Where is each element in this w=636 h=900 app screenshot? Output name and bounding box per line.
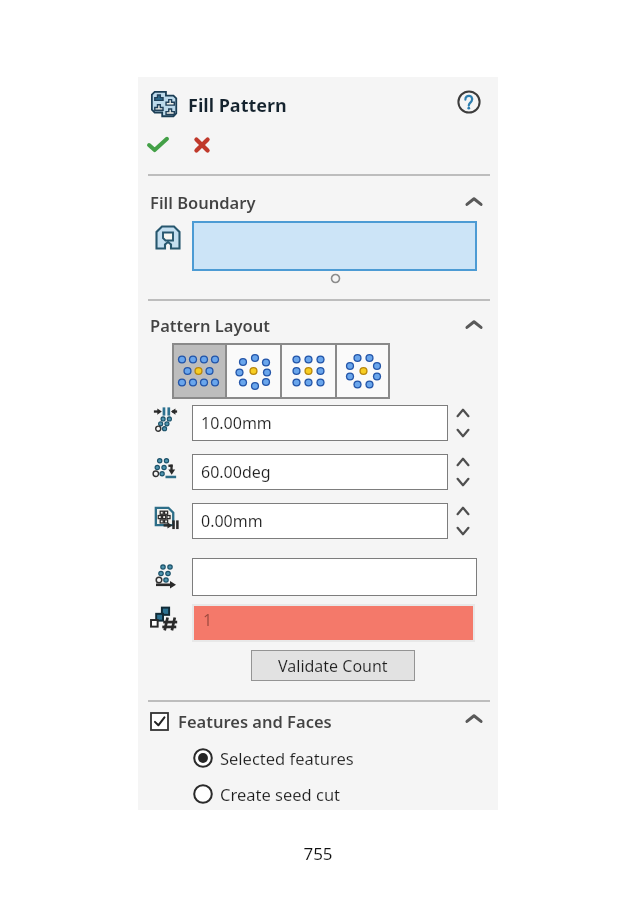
button[interactable]: Collapse: [463, 316, 485, 338]
button[interactable]: Layout 1: [227, 343, 280, 399]
staticText: Validate Count: [278, 655, 388, 677]
staticText: 0.00mm: [201, 510, 263, 532]
staticText: 10.00mm: [201, 412, 272, 434]
button[interactable]: 1: [194, 606, 473, 640]
button[interactable]: Layout 2: [282, 343, 335, 399]
button[interactable]: Pattern Layout: [150, 314, 270, 338]
button[interactable]: Selected features: [193, 746, 354, 770]
staticText: 1: [203, 609, 213, 631]
button[interactable]: Increase/decrease: [455, 455, 471, 489]
button[interactable]: Increase/decrease: [455, 406, 471, 440]
button[interactable]: Create seed cut: [193, 782, 341, 806]
button[interactable]: Layout 3: [337, 343, 390, 399]
button[interactable]: Collapse: [463, 710, 485, 732]
button[interactable]: Layout 0: [172, 343, 225, 399]
staticText: Create seed cut: [220, 783, 341, 805]
button[interactable]: [192, 221, 477, 271]
button[interactable]: Increase/decrease: [455, 504, 471, 538]
staticText: 755: [303, 842, 333, 865]
staticText: 60.00deg: [201, 461, 271, 483]
staticText: Fill Boundary: [150, 191, 256, 213]
button[interactable]: Validate Count: [251, 650, 415, 681]
button[interactable]: Fill Pattern: [150, 88, 287, 122]
button[interactable]: 60.00deg: [192, 454, 448, 490]
staticText: Pattern Layout: [150, 314, 270, 336]
staticText: Fill Pattern: [188, 93, 287, 118]
button[interactable]: Fill Boundary: [150, 191, 256, 215]
staticText: Selected features: [220, 747, 354, 769]
button[interactable]: Cancel: [188, 131, 216, 159]
button[interactable]: Features and Faces: [150, 709, 332, 733]
button[interactable]: Help: [457, 90, 481, 114]
button[interactable]: Collapse: [463, 193, 485, 215]
button[interactable]: 10.00mm: [192, 405, 448, 441]
button[interactable]: 0.00mm: [192, 503, 448, 539]
staticText: Features and Faces: [178, 710, 332, 732]
button[interactable]: OK: [144, 131, 172, 159]
button[interactable]: Resize selection box: [331, 274, 340, 283]
button[interactable]: Fill boundary selection: [153, 223, 183, 253]
button[interactable]: [192, 558, 477, 596]
